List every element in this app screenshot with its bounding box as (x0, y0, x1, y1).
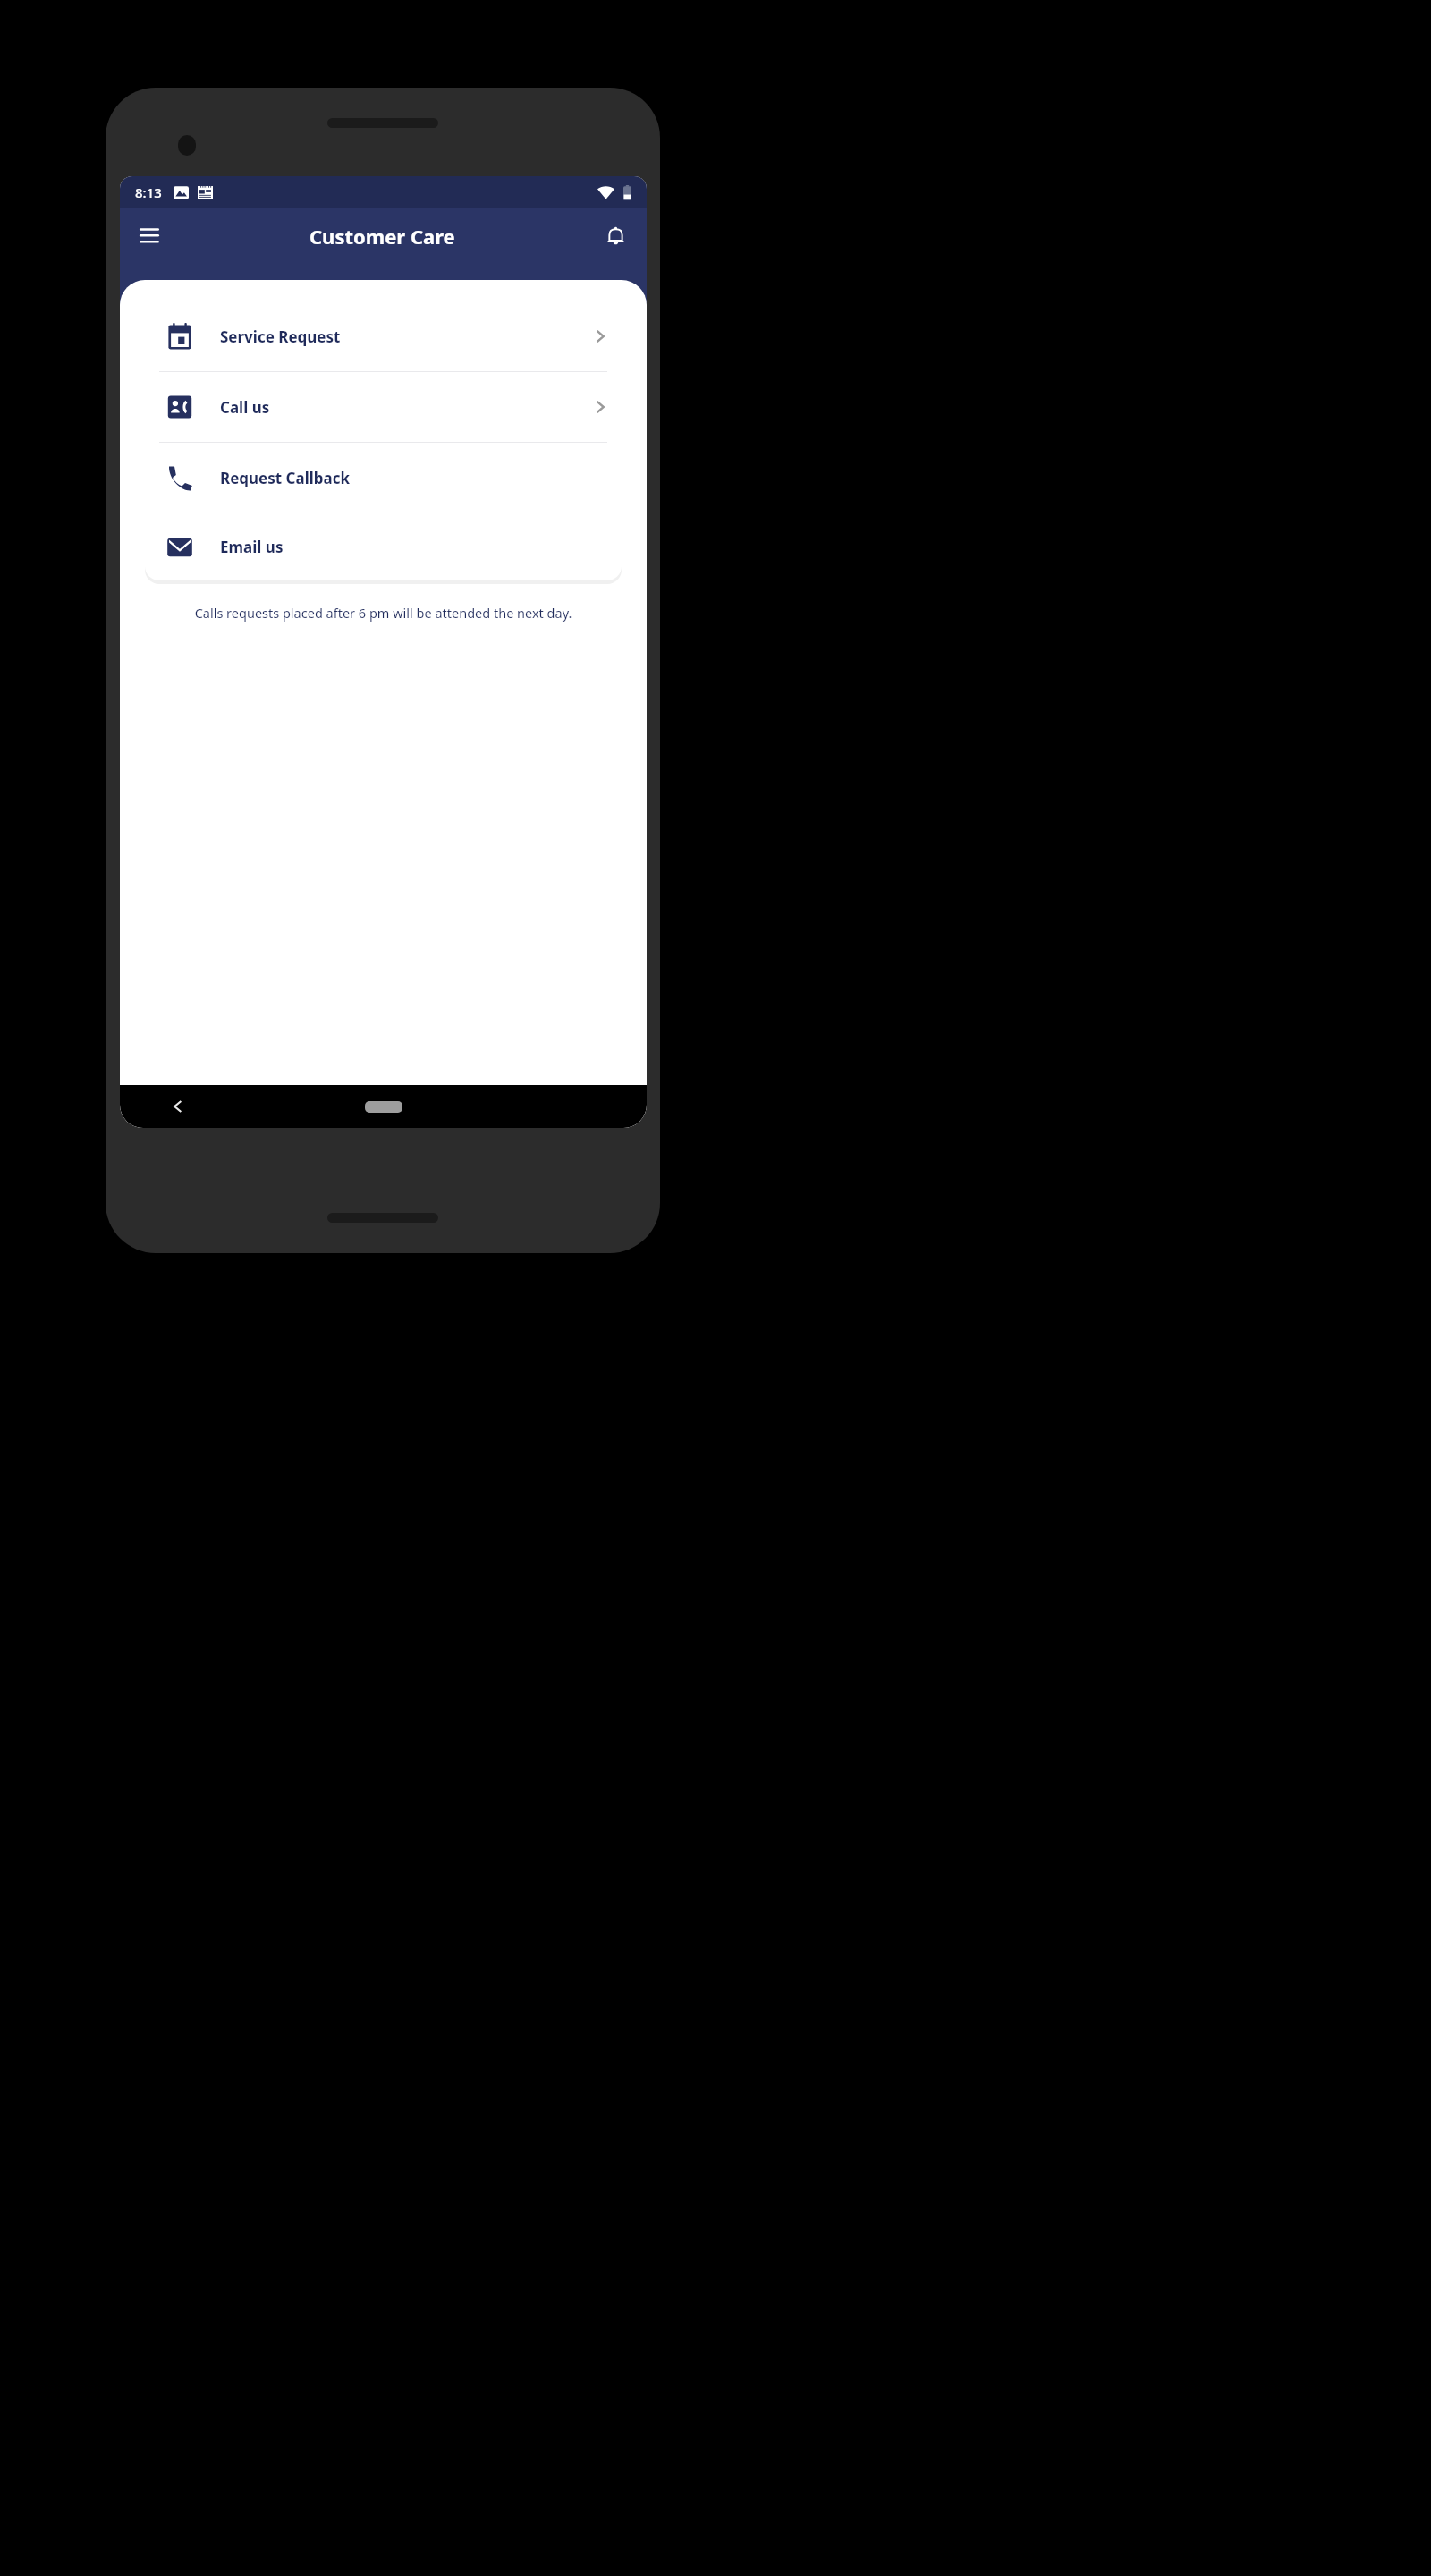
staticText: Calls requests placed after 6 pm will be… (159, 604, 607, 622)
button[interactable]: Home (365, 1101, 402, 1113)
button[interactable]: Menu (129, 216, 170, 257)
staticText: Email us (220, 537, 284, 557)
button[interactable]: Back (159, 1089, 195, 1124)
staticText: 8:13 (135, 183, 162, 201)
button[interactable]: Service Request (145, 301, 622, 371)
staticText: Service Request (220, 326, 341, 347)
staticText: Call us (220, 397, 270, 418)
staticText: Request Callback (220, 468, 351, 488)
button[interactable]: Call us (145, 372, 622, 442)
button[interactable]: Email us (145, 513, 622, 580)
button[interactable]: Notifications (595, 216, 636, 257)
button[interactable]: Request Callback (145, 443, 622, 513)
staticText: Customer Care (309, 223, 455, 250)
